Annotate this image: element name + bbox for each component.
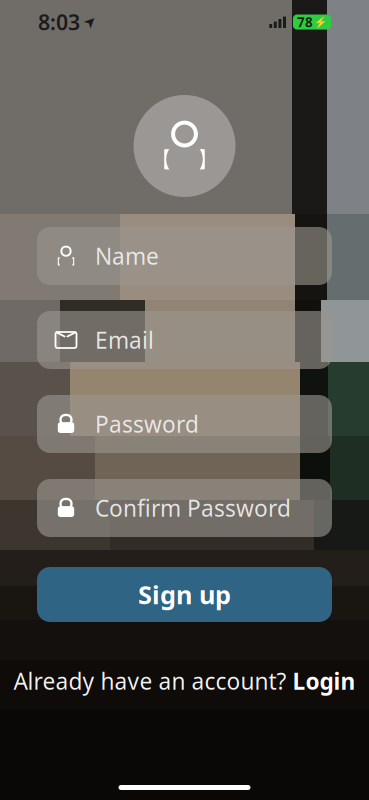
staticText: ➤ [84,14,96,30]
staticText: Name [95,241,159,271]
staticText: Login [292,666,355,696]
staticText: 8:03 [38,8,80,36]
staticText: Already have an account? [13,666,286,696]
button[interactable]: Name [37,227,332,285]
button[interactable]: Sign up [37,567,332,622]
button[interactable]: Password [37,395,332,453]
button[interactable]: Email [37,311,332,369]
staticText: Confirm Password [95,493,291,523]
staticText: Email [95,325,154,355]
button[interactable]: Confirm Password [37,479,332,537]
staticText: 78 [297,13,313,31]
staticText: ⚡ [314,16,327,28]
staticText: Sign up [138,578,231,611]
button[interactable]: Already have an account? [13,666,355,696]
staticText: Password [95,409,199,439]
